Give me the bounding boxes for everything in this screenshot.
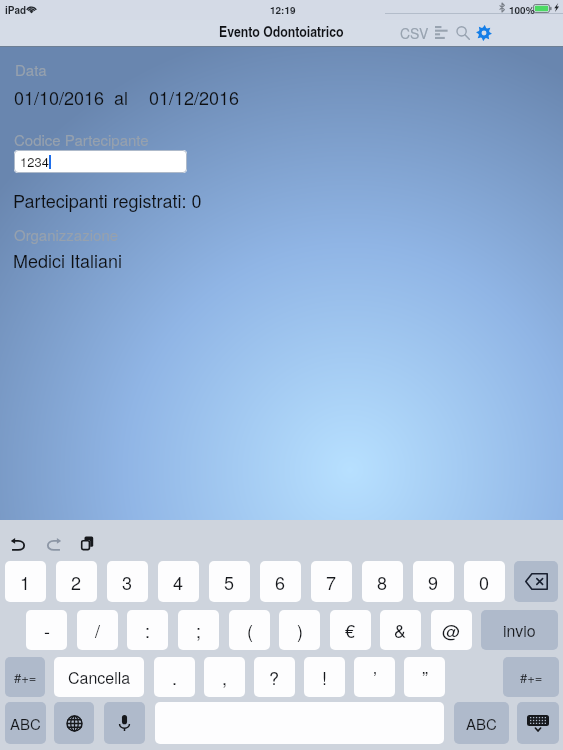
- staticText: ?: [269, 664, 280, 690]
- button[interactable]: Paste: [72, 528, 103, 559]
- staticText: 4: [173, 569, 184, 595]
- staticText: €: [345, 617, 356, 643]
- button[interactable]: 0: [464, 561, 505, 602]
- staticText: ,: [222, 664, 228, 690]
- button[interactable]: .: [154, 657, 195, 697]
- button[interactable]: 2: [56, 561, 97, 602]
- button[interactable]: 5: [209, 561, 250, 602]
- button[interactable]: -: [26, 610, 67, 650]
- staticText: 5: [224, 569, 235, 595]
- staticText: al: [114, 84, 129, 110]
- button[interactable]: 6: [260, 561, 301, 602]
- staticText: Medici Italiani: [13, 247, 123, 273]
- button[interactable]: ABC: [5, 702, 46, 744]
- button[interactable]: #+=: [5, 657, 45, 697]
- button[interactable]: ;: [178, 610, 219, 650]
- staticText: 9: [428, 569, 439, 595]
- button[interactable]: €: [330, 610, 371, 650]
- button[interactable]: (: [229, 610, 270, 650]
- staticText: 8: [377, 569, 388, 595]
- button[interactable]: Change language: [54, 702, 94, 744]
- button[interactable]: ABC: [454, 702, 509, 744]
- staticText: 2: [71, 569, 82, 595]
- staticText: .: [172, 664, 178, 690]
- staticText: iPad: [5, 3, 27, 17]
- staticText: Partecipanti registrati: 0: [13, 187, 202, 213]
- button[interactable]: ): [279, 610, 320, 650]
- button[interactable]: Settings: [471, 20, 496, 45]
- staticText: 7: [326, 569, 337, 595]
- staticText: :: [145, 617, 151, 643]
- staticText: Organizzazione: [14, 224, 119, 245]
- button[interactable]: Cancella: [54, 657, 144, 697]
- button[interactable]: ?: [254, 657, 295, 697]
- button[interactable]: Hide keyboard: [517, 702, 559, 744]
- button[interactable]: &: [380, 610, 421, 650]
- button[interactable]: Search: [451, 21, 474, 44]
- staticText: 01/12/2016: [149, 84, 240, 110]
- button[interactable]: 3: [107, 561, 148, 602]
- button[interactable]: CSV: [398, 22, 431, 44]
- staticText: /: [95, 617, 101, 643]
- staticText: 3: [122, 569, 133, 595]
- button[interactable]: @: [431, 610, 472, 650]
- staticText: 1: [20, 569, 31, 595]
- staticText: ’: [373, 664, 377, 690]
- staticText: #+=: [520, 668, 543, 687]
- button[interactable]: invio: [481, 610, 558, 650]
- button[interactable]: !: [304, 657, 345, 697]
- button[interactable]: :: [127, 610, 168, 650]
- staticText: -: [44, 617, 50, 643]
- staticText: CSV: [400, 23, 429, 43]
- staticText: 100%: [509, 3, 535, 17]
- button[interactable]: ,: [204, 657, 245, 697]
- staticText: Evento Odontoiatrico: [219, 20, 344, 41]
- staticText: ): [297, 617, 303, 643]
- button[interactable]: Undo: [3, 528, 34, 559]
- button[interactable]: 1: [5, 561, 46, 602]
- button[interactable]: 4: [158, 561, 199, 602]
- button[interactable]: ”: [404, 657, 445, 697]
- staticText: &: [394, 617, 407, 643]
- button[interactable]: Report: [430, 21, 453, 44]
- button[interactable]: 8: [362, 561, 403, 602]
- staticText: ;: [196, 617, 202, 643]
- staticText: Data: [15, 59, 47, 80]
- button[interactable]: 9: [413, 561, 454, 602]
- staticText: 1234: [20, 152, 49, 171]
- staticText: ”: [422, 664, 428, 690]
- button[interactable]: Redo: [38, 528, 69, 559]
- button[interactable]: ’: [354, 657, 395, 697]
- staticText: 01/10/2016: [14, 84, 105, 110]
- staticText: #+=: [14, 668, 37, 687]
- staticText: 0: [479, 569, 490, 595]
- button[interactable]: /: [77, 610, 118, 650]
- staticText: Codice Partecipante: [14, 129, 149, 150]
- button[interactable]: 1234: [14, 150, 187, 173]
- button[interactable]: Dictate: [104, 702, 145, 744]
- staticText: invio: [503, 619, 536, 642]
- button[interactable]: Backspace: [514, 561, 558, 602]
- staticText: 12:19: [270, 3, 296, 17]
- button[interactable]: #+=: [503, 657, 559, 697]
- button[interactable]: 7: [311, 561, 352, 602]
- staticText: Cancella: [68, 666, 131, 689]
- staticText: @: [442, 617, 461, 643]
- staticText: !: [322, 664, 328, 690]
- staticText: 6: [275, 569, 286, 595]
- staticText: (: [247, 617, 253, 643]
- staticText: ABC: [466, 713, 497, 734]
- staticText: ABC: [10, 713, 41, 734]
